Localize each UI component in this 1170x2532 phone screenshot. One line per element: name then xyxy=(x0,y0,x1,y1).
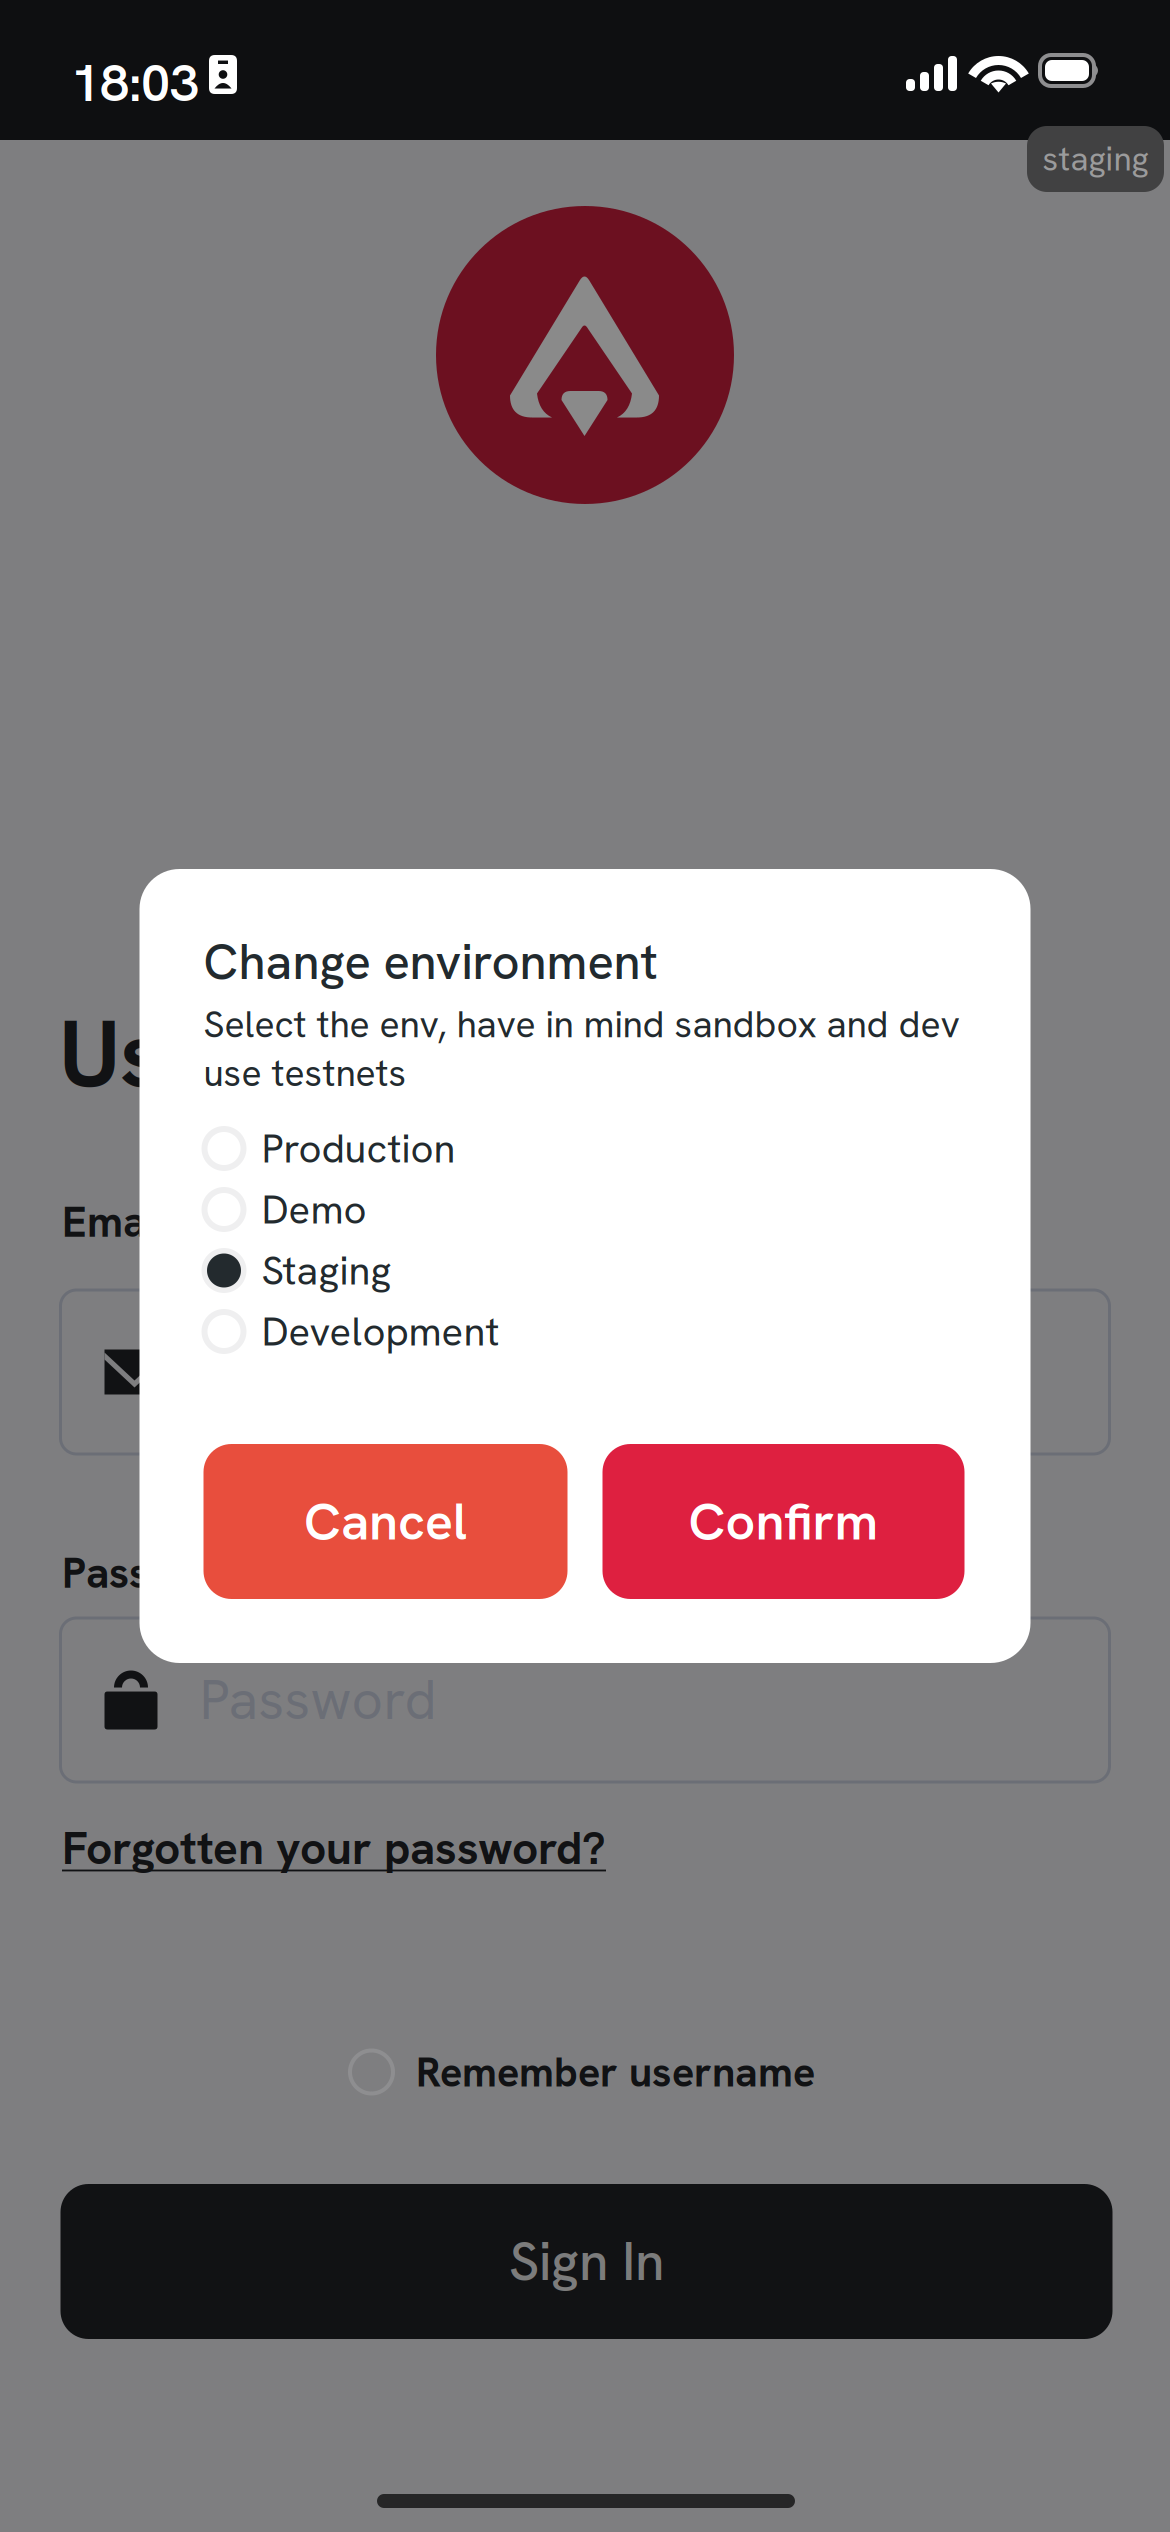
staticText: Email xyxy=(62,1194,168,1250)
button[interactable]: Cancel xyxy=(203,1444,567,1599)
staticText: Sign In xyxy=(509,2227,664,2296)
staticText: Email xyxy=(206,1336,339,1408)
staticText: Username xyxy=(59,993,487,1115)
staticText: Demo xyxy=(261,1183,366,1235)
staticText: Forgotten your password? xyxy=(62,1818,606,1878)
button[interactable]: Production xyxy=(201,1118,801,1179)
staticText: Change environment xyxy=(203,930,657,994)
staticText: Confirm xyxy=(688,1488,878,1555)
button[interactable]: Sign In xyxy=(60,2184,1112,2339)
staticText: Staging xyxy=(261,1244,391,1296)
button[interactable]: Demo xyxy=(201,1179,801,1240)
button[interactable]: Remember username xyxy=(350,2044,815,2100)
staticText: Password xyxy=(199,1664,436,1736)
button[interactable]: Development xyxy=(201,1301,801,1362)
button[interactable]: Confirm xyxy=(602,1444,964,1599)
staticText: Remember username xyxy=(416,2045,815,2099)
staticText: Password xyxy=(62,1545,246,1601)
button[interactable]: Staging xyxy=(201,1240,801,1301)
staticText: Development xyxy=(261,1305,499,1357)
staticText: 18:03 xyxy=(71,49,199,117)
staticText: staging xyxy=(1042,137,1148,181)
staticText: Select the env, have in mind sandbox and… xyxy=(203,1000,959,1097)
staticText: Production xyxy=(261,1122,455,1174)
button[interactable]: Forgotten your password? xyxy=(62,1818,606,1878)
staticText: Cancel xyxy=(304,1488,467,1555)
